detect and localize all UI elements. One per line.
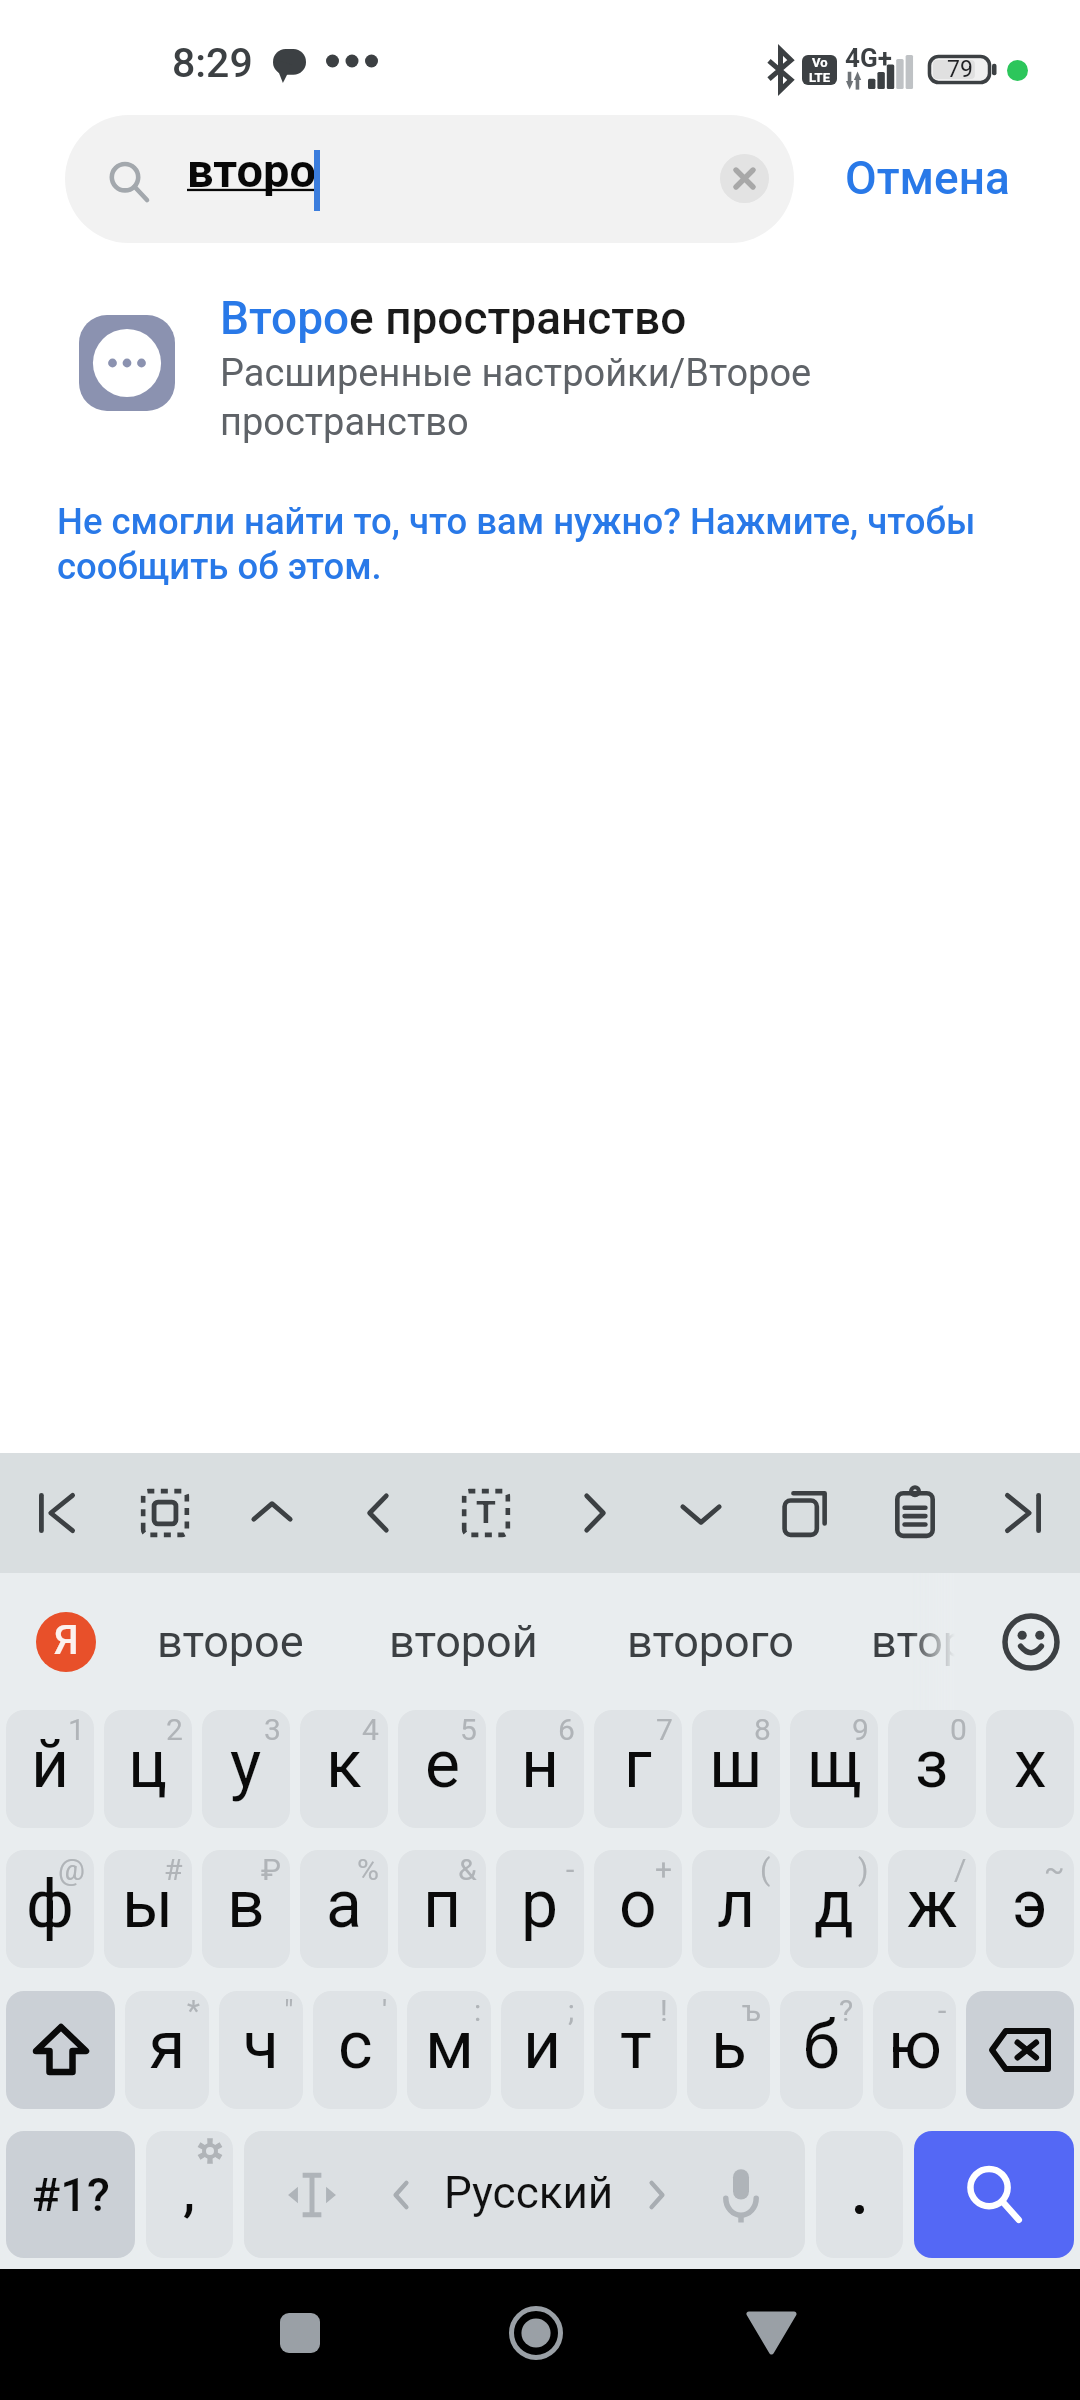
button[interactable]: - bbox=[496, 1850, 584, 1968]
button[interactable]: Recents bbox=[240, 2267, 360, 2398]
button[interactable]: 4 bbox=[300, 1710, 388, 1828]
button[interactable]: 2 bbox=[104, 1710, 192, 1828]
staticText: ь bbox=[711, 2007, 747, 2084]
button[interactable]: ₽ bbox=[202, 1850, 290, 1968]
button[interactable]: Select all bbox=[115, 1453, 215, 1573]
button[interactable]: Home bbox=[476, 2267, 596, 2398]
button[interactable]: Space bbox=[244, 2131, 805, 2258]
staticText: * bbox=[187, 1993, 200, 2028]
staticText: Русский bbox=[444, 2167, 614, 2219]
button[interactable]: Clear bbox=[720, 154, 769, 203]
button[interactable]: / bbox=[888, 1850, 976, 1968]
staticText: ж bbox=[907, 1866, 958, 1943]
staticText: второй bbox=[389, 1615, 538, 1668]
staticText: д bbox=[814, 1866, 854, 1943]
button[interactable]: Right bbox=[544, 1453, 644, 1573]
button[interactable]: второй bbox=[378, 1573, 548, 1710]
staticText: т bbox=[620, 2007, 652, 2084]
staticText: 8:29 bbox=[172, 39, 253, 87]
staticText: е bbox=[425, 1726, 460, 1803]
button[interactable]: ! bbox=[594, 1991, 677, 2109]
staticText: второе bbox=[157, 1615, 304, 1668]
staticText: х bbox=[1014, 1726, 1047, 1803]
button[interactable]: Move to end bbox=[973, 1453, 1073, 1573]
button[interactable]: & bbox=[398, 1850, 486, 1968]
button[interactable]: #1? bbox=[6, 2131, 135, 2258]
button[interactable]: # bbox=[104, 1850, 192, 1968]
button[interactable]: Back bbox=[711, 2267, 831, 2398]
button[interactable]: 1 bbox=[6, 1710, 94, 1828]
staticText: второ bbox=[187, 143, 316, 198]
button[interactable]: ? bbox=[780, 1991, 863, 2109]
button[interactable]: @ bbox=[6, 1850, 94, 1968]
button[interactable]: 6 bbox=[496, 1710, 584, 1828]
staticText: : bbox=[474, 1993, 482, 2028]
button[interactable]: % bbox=[300, 1850, 388, 1968]
button[interactable]: 0 bbox=[888, 1710, 976, 1828]
button[interactable]: Up bbox=[222, 1453, 322, 1573]
button[interactable]: Yandex bbox=[36, 1612, 96, 1672]
button[interactable]: Второе пространство bbox=[0, 243, 1080, 454]
button[interactable]: Paste bbox=[865, 1453, 965, 1573]
button[interactable]: второе bbox=[149, 1573, 312, 1710]
button[interactable]: 5 bbox=[398, 1710, 486, 1828]
button[interactable]: второго bbox=[617, 1573, 803, 1710]
staticText: T bbox=[476, 1493, 496, 1531]
button[interactable]: ~ bbox=[986, 1850, 1074, 1968]
staticText: Второе пространство bbox=[220, 291, 687, 345]
staticText: к bbox=[326, 1726, 362, 1803]
staticText: я bbox=[149, 2007, 186, 2084]
button[interactable]: " bbox=[219, 1991, 303, 2109]
button[interactable]: ' bbox=[313, 1991, 397, 2109]
button[interactable]: Не смогли найти то, что вам нужно? Нажми… bbox=[0, 454, 1080, 588]
button[interactable]: Down bbox=[651, 1453, 751, 1573]
button[interactable]: * bbox=[125, 1991, 209, 2109]
button[interactable]: х bbox=[986, 1710, 1074, 1828]
staticText: й bbox=[31, 1726, 70, 1803]
button[interactable]: Select text bbox=[436, 1453, 536, 1573]
button[interactable]: 3 bbox=[202, 1710, 290, 1828]
button[interactable]: : bbox=[407, 1991, 491, 2109]
button[interactable] bbox=[816, 2131, 903, 2258]
button[interactable]: ) bbox=[790, 1850, 878, 1968]
staticText: # bbox=[164, 1852, 183, 1887]
button[interactable]: Copy bbox=[758, 1453, 858, 1573]
button[interactable]: + bbox=[594, 1850, 682, 1968]
button[interactable]: Move to start bbox=[7, 1453, 107, 1573]
staticText: 4G+ bbox=[845, 43, 892, 73]
staticText: 5 bbox=[460, 1712, 477, 1747]
button[interactable]: ; bbox=[501, 1991, 584, 2109]
button[interactable]: 7 bbox=[594, 1710, 682, 1828]
staticText: н bbox=[521, 1726, 560, 1803]
button[interactable]: ( bbox=[692, 1850, 780, 1968]
staticText: ( bbox=[760, 1852, 771, 1887]
staticText: 4 bbox=[362, 1712, 379, 1747]
button[interactable]: Left bbox=[329, 1453, 429, 1573]
staticText: г bbox=[624, 1726, 652, 1803]
button[interactable]: Search bbox=[914, 2131, 1074, 2258]
staticText: 3 bbox=[264, 1712, 281, 1747]
staticText: ф bbox=[26, 1866, 74, 1943]
staticText: втор bbox=[871, 1615, 969, 1668]
staticText: з bbox=[915, 1726, 949, 1803]
button[interactable]: - bbox=[873, 1991, 956, 2109]
button[interactable]: 8 bbox=[692, 1710, 780, 1828]
staticText: / bbox=[954, 1852, 967, 1887]
button[interactable]: второ bbox=[65, 115, 794, 243]
staticText: п bbox=[423, 1866, 462, 1943]
staticText: э bbox=[1012, 1866, 1048, 1943]
staticText: ) bbox=[858, 1852, 869, 1887]
button[interactable]: 9 bbox=[790, 1710, 878, 1828]
staticText: , bbox=[183, 2160, 196, 2223]
staticText: ; bbox=[568, 1993, 575, 2028]
button[interactable]: Shift bbox=[6, 1991, 115, 2109]
staticText: - bbox=[566, 1852, 575, 1887]
button[interactable]: Отмена bbox=[845, 115, 1030, 243]
button[interactable]: Backspace bbox=[966, 1991, 1074, 2109]
button[interactable]: , bbox=[146, 2131, 233, 2258]
button[interactable]: ъ bbox=[687, 1991, 770, 2109]
staticText: ч bbox=[243, 2007, 279, 2084]
button[interactable]: втор bbox=[871, 1573, 971, 1710]
button[interactable]: Emoji bbox=[1000, 1611, 1062, 1673]
staticText: б bbox=[803, 2007, 840, 2084]
